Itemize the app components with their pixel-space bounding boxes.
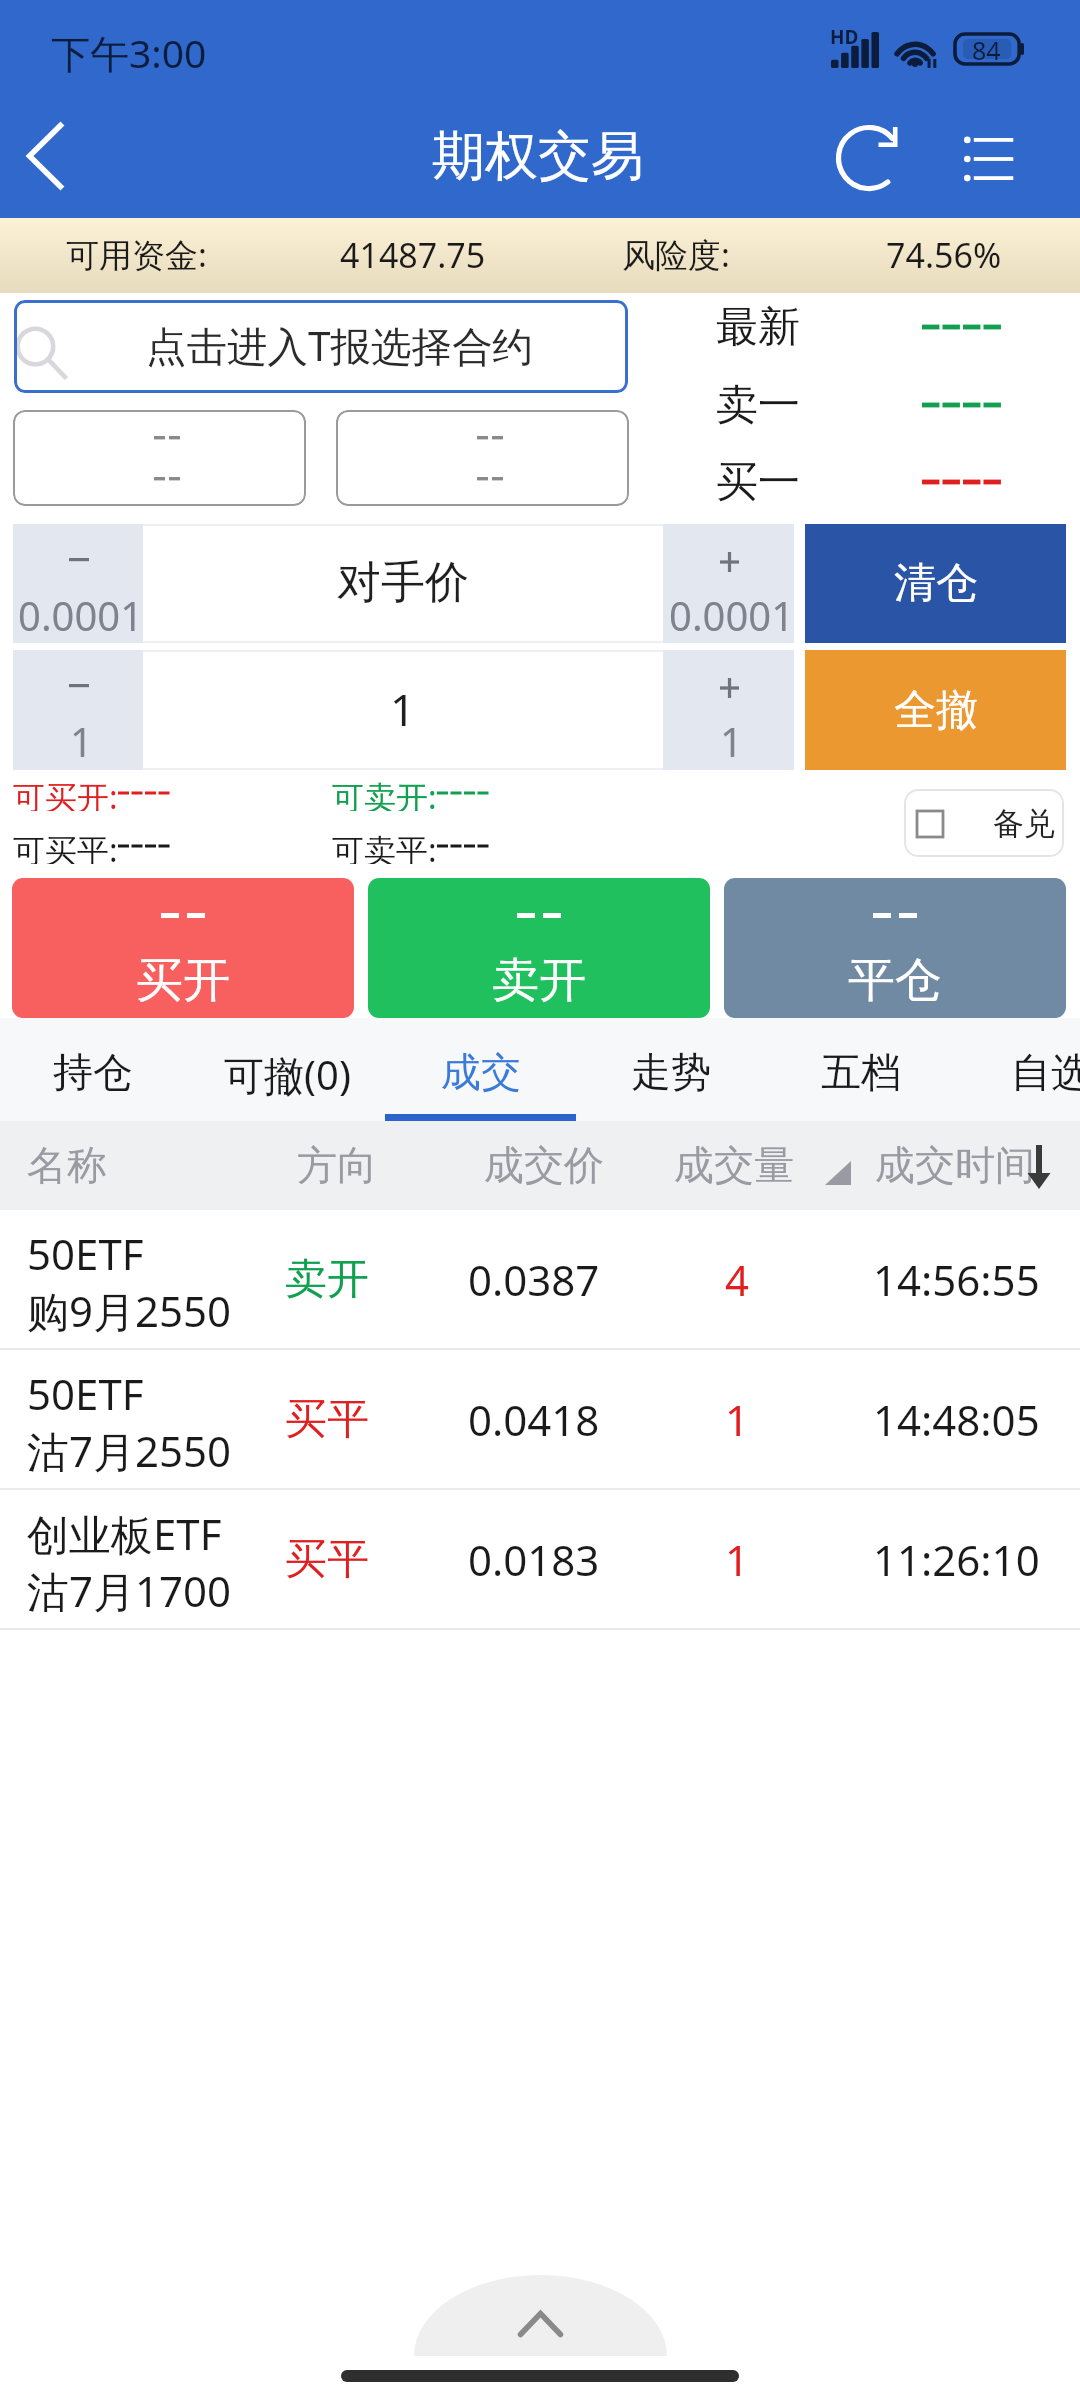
- staticText: 卖开: [492, 951, 586, 1010]
- staticText: 创业板ETF: [27, 1505, 222, 1562]
- staticText: 购9月2550: [27, 1282, 232, 1339]
- staticText: 14:56:55: [873, 1251, 1040, 1308]
- staticText: 可用资金:: [66, 232, 207, 277]
- staticText: 方向: [297, 1140, 377, 1190]
- staticText: 0.0387: [468, 1251, 600, 1308]
- staticText: 0.0001: [669, 588, 795, 642]
- staticText: 1: [70, 714, 93, 768]
- staticText: 卖开: [285, 1253, 369, 1306]
- button[interactable]: [336, 410, 629, 506]
- staticText: 成交时间: [875, 1140, 1035, 1190]
- staticText: 走势: [631, 1047, 711, 1097]
- staticText: 沽7月2550: [27, 1422, 232, 1479]
- staticText: 可卖平:: [332, 828, 437, 864]
- staticText: 全撤: [894, 684, 978, 737]
- button[interactable]: Back: [0, 100, 112, 218]
- staticText: 可撤(0): [224, 1047, 351, 1102]
- button[interactable]: 买开: [12, 878, 354, 1018]
- button[interactable]: 对手价: [143, 524, 663, 643]
- staticText: 买平: [285, 1533, 369, 1586]
- staticText: 84: [972, 33, 1001, 63]
- staticText: 平仓: [848, 951, 942, 1010]
- staticText: 1: [720, 714, 743, 768]
- staticText: 下午3:00: [51, 26, 207, 79]
- staticText: 最新: [716, 301, 800, 354]
- button[interactable]: Refresh: [812, 100, 924, 218]
- staticText: 50ETF: [27, 1365, 144, 1422]
- staticText: 买开: [136, 951, 230, 1010]
- staticText: 买一: [716, 456, 800, 509]
- staticText: 可卖开:: [332, 775, 437, 811]
- staticText: 名称: [27, 1140, 107, 1190]
- staticText: 50ETF: [27, 1225, 144, 1282]
- button[interactable]: 50ETF: [0, 1210, 1080, 1348]
- button[interactable]: 备兑: [904, 789, 1064, 857]
- staticText: 五档: [821, 1047, 901, 1097]
- button[interactable]: Increase: [663, 650, 794, 770]
- button[interactable]: 50ETF: [0, 1350, 1080, 1488]
- staticText: 成交量: [674, 1140, 794, 1190]
- staticText: 1: [725, 1531, 750, 1588]
- staticText: 可买平:: [13, 828, 118, 864]
- staticText: 1: [390, 679, 416, 739]
- staticText: 0.0418: [468, 1391, 600, 1448]
- staticText: 期权交易: [432, 123, 644, 190]
- button[interactable]: 平仓: [724, 878, 1066, 1018]
- button[interactable]: Expand: [414, 2275, 667, 2356]
- staticText: 点击进入T报选择合约: [146, 318, 534, 373]
- button[interactable]: 1: [143, 650, 663, 770]
- button[interactable]: 创业板ETF: [0, 1490, 1080, 1628]
- staticText: 风险度:: [622, 232, 730, 277]
- staticText: 买平: [285, 1393, 369, 1446]
- button[interactable]: 点击进入T报选择合约: [14, 300, 628, 393]
- staticText: 成交: [441, 1047, 521, 1097]
- staticText: HD: [830, 24, 859, 50]
- staticText: 74.56%: [886, 232, 1002, 278]
- button[interactable]: Decrease: [13, 524, 143, 643]
- staticText: 对手价: [337, 555, 469, 610]
- staticText: 0.0001: [18, 588, 144, 642]
- staticText: 1: [725, 1391, 750, 1448]
- staticText: 卖一: [716, 379, 800, 432]
- staticText: 可买开:: [13, 775, 118, 811]
- button[interactable]: Increase: [663, 524, 794, 643]
- button[interactable]: 卖开: [368, 878, 710, 1018]
- staticText: 11:26:10: [873, 1531, 1040, 1588]
- button[interactable]: 五档: [765, 1018, 956, 1121]
- staticText: 沽7月1700: [27, 1562, 232, 1619]
- button[interactable]: [13, 410, 306, 506]
- staticText: 14:48:05: [873, 1391, 1040, 1448]
- button[interactable]: 全撤: [805, 650, 1066, 770]
- button[interactable]: 持仓: [0, 1018, 188, 1121]
- button[interactable]: 成交: [385, 1018, 576, 1121]
- staticText: 41487.75: [340, 232, 486, 278]
- button[interactable]: 自选: [955, 1018, 1080, 1121]
- staticText: 成交价: [484, 1140, 604, 1190]
- button[interactable]: 清仓: [805, 524, 1066, 643]
- staticText: 持仓: [53, 1047, 133, 1097]
- button[interactable]: 走势: [575, 1018, 766, 1121]
- button[interactable]: 可撤(0): [192, 1018, 383, 1121]
- staticText: 自选: [1011, 1047, 1080, 1097]
- staticText: 0.0183: [468, 1531, 600, 1588]
- staticText: 4: [725, 1251, 750, 1308]
- staticText: 备兑: [993, 804, 1055, 843]
- staticText: 清仓: [894, 557, 978, 610]
- button[interactable]: Menu: [932, 100, 1044, 218]
- button[interactable]: Decrease: [13, 650, 143, 770]
